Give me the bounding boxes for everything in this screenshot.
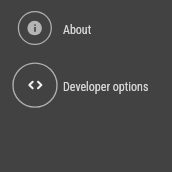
staticText: About [63,23,92,37]
staticText: Developer options [63,80,149,94]
button[interactable]: About [10,8,162,49]
button[interactable]: Developer options [10,62,162,108]
other: Developer options [13,64,56,107]
other: About [18,12,51,45]
